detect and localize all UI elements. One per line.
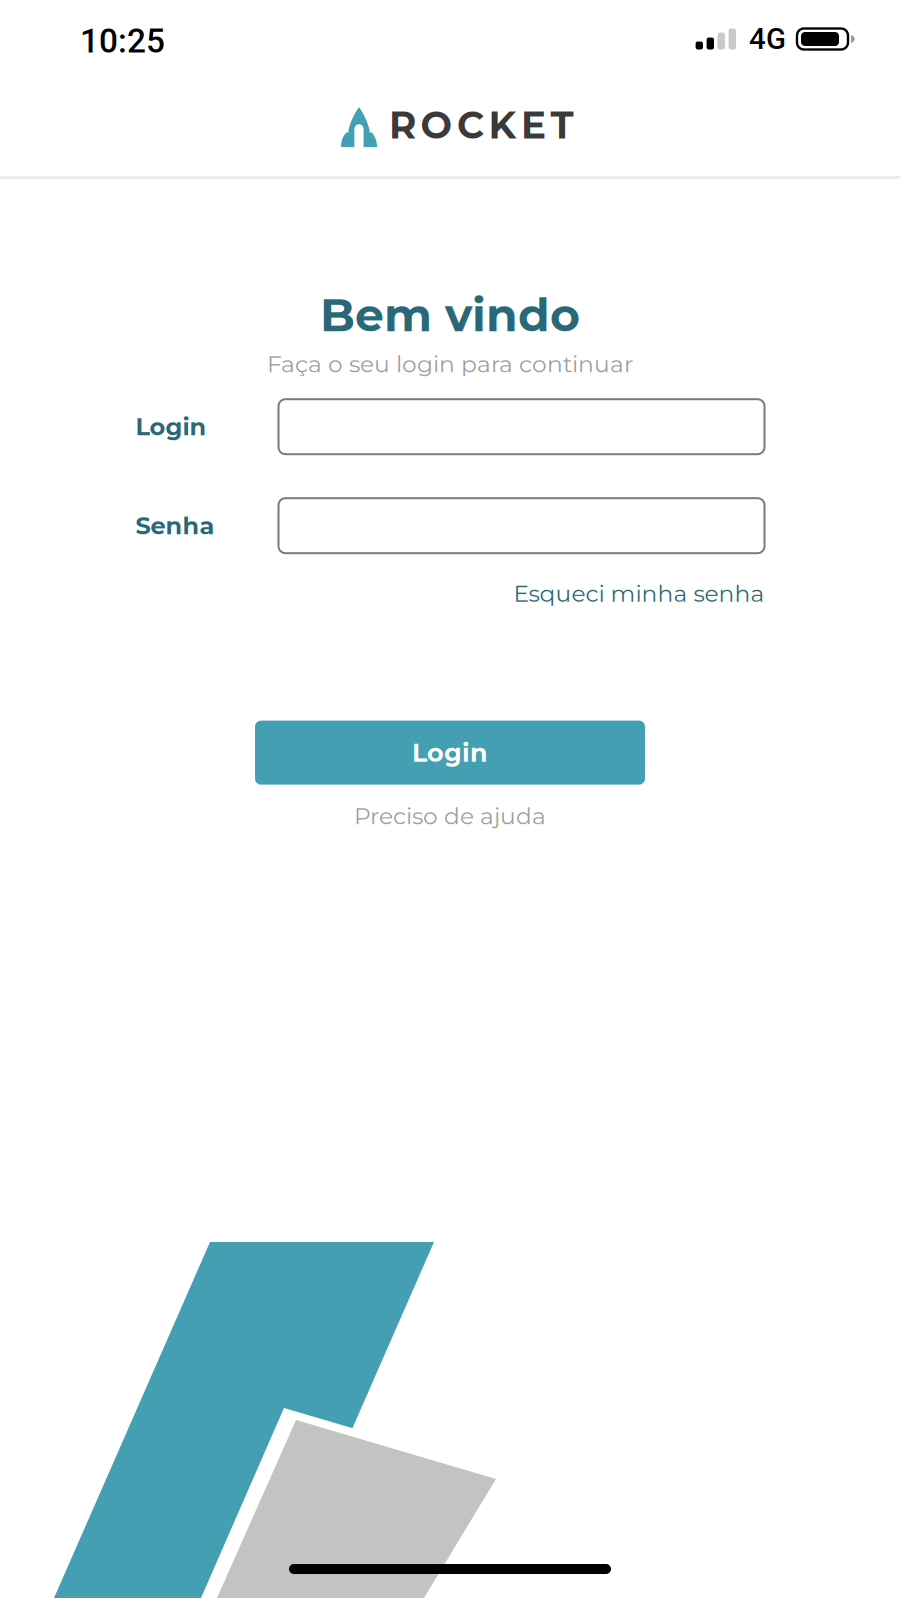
staticText: Senha [135,511,214,540]
button[interactable] [278,399,764,454]
staticText: 4G [749,22,786,56]
button[interactable]: Preciso de ajuda [354,802,546,830]
button[interactable]: Esqueci minha senha [513,579,764,608]
staticText: Bem vindo [320,287,580,343]
staticText: Login [412,737,488,768]
staticText: Login [135,412,206,441]
staticText: Preciso de ajuda [354,802,546,830]
staticText: Faça o seu login para continuar [267,350,633,378]
button[interactable] [278,498,764,553]
staticText: ROCKET [389,102,573,148]
button[interactable]: Login [255,721,645,785]
staticText: Esqueci minha senha [513,579,764,608]
staticText: 10:25 [80,21,165,61]
